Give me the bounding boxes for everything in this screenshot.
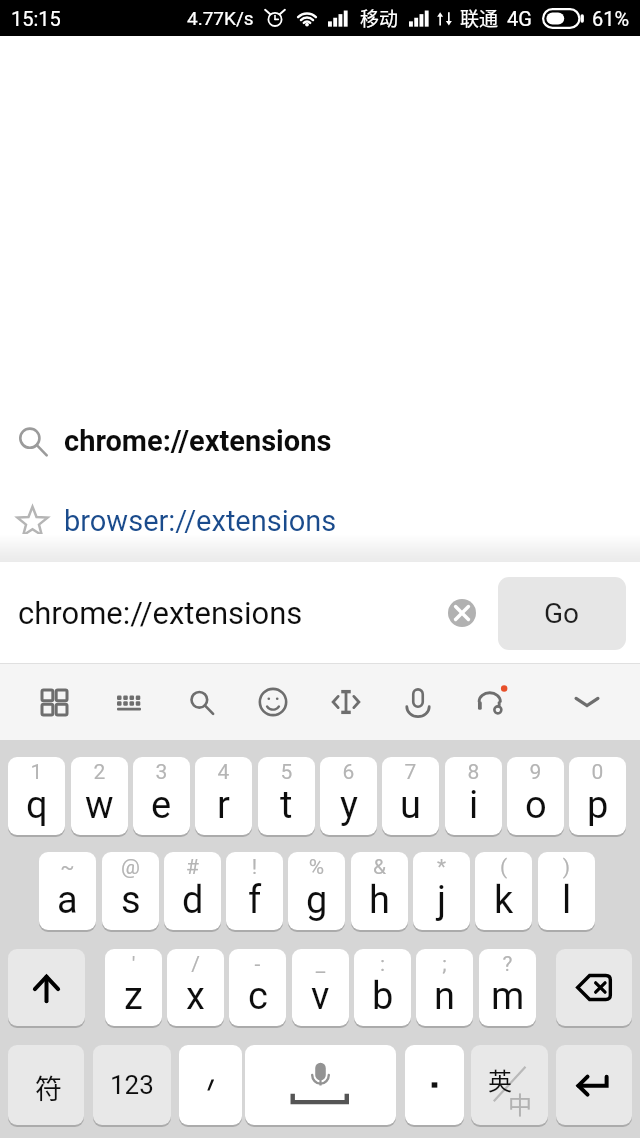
button[interactable]: Space bbox=[245, 1045, 396, 1125]
staticText: # bbox=[164, 855, 221, 880]
staticText: u bbox=[400, 783, 421, 828]
button[interactable]: Period bbox=[405, 1045, 464, 1125]
staticText: 4 bbox=[195, 760, 252, 785]
staticText: 6 bbox=[320, 760, 377, 785]
staticText: * bbox=[413, 855, 470, 880]
staticText: ' bbox=[105, 952, 162, 977]
button[interactable]: Switch input language bbox=[471, 1045, 548, 1125]
staticText: & bbox=[351, 855, 408, 880]
button[interactable]: 123 bbox=[93, 1045, 171, 1125]
button[interactable]: ? bbox=[479, 949, 536, 1026]
staticText: c bbox=[248, 974, 268, 1019]
button[interactable]: 5 bbox=[258, 757, 315, 835]
button[interactable]: 6 bbox=[320, 757, 377, 835]
button[interactable]: : bbox=[354, 949, 411, 1026]
button[interactable]: % bbox=[288, 852, 345, 930]
staticText: p bbox=[587, 783, 609, 828]
button[interactable]: - bbox=[229, 949, 286, 1026]
button[interactable]: & bbox=[351, 852, 408, 930]
button[interactable]: Keyboard layout bbox=[99, 672, 159, 732]
button[interactable]: Search bbox=[171, 672, 231, 732]
button[interactable]: 0 bbox=[569, 757, 626, 835]
staticText: d bbox=[182, 878, 204, 923]
staticText: 15:15 bbox=[11, 7, 61, 30]
button[interactable]: 3 bbox=[133, 757, 190, 835]
staticText: n bbox=[434, 974, 455, 1019]
staticText: 4G bbox=[507, 7, 532, 30]
button[interactable]: _ bbox=[292, 949, 349, 1026]
staticText: z bbox=[124, 974, 143, 1019]
staticText: 英 bbox=[488, 1062, 512, 1097]
staticText: j bbox=[437, 878, 447, 923]
staticText: chrome://extensions bbox=[18, 595, 303, 631]
staticText: i bbox=[469, 783, 479, 828]
staticText: ~ bbox=[39, 855, 96, 880]
staticText: 4.77K/s bbox=[187, 7, 254, 29]
staticText: ( bbox=[475, 855, 532, 880]
staticText: o bbox=[525, 783, 547, 828]
staticText: 9 bbox=[507, 760, 564, 785]
staticText: r bbox=[217, 783, 230, 828]
staticText: 123 bbox=[110, 1070, 154, 1100]
button[interactable]: Move cursor bbox=[316, 672, 376, 732]
button[interactable]: * bbox=[413, 852, 470, 930]
staticText: chrome://extensions bbox=[64, 424, 332, 458]
button[interactable]: ! bbox=[226, 852, 283, 930]
staticText: % bbox=[288, 855, 345, 880]
staticText: @ bbox=[102, 855, 159, 880]
staticText: b bbox=[372, 974, 394, 1019]
button[interactable]: Go bbox=[498, 577, 626, 650]
button[interactable]: 4 bbox=[195, 757, 252, 835]
button[interactable]: Clear text bbox=[440, 591, 484, 635]
button[interactable]: 2 bbox=[71, 757, 128, 835]
staticText: g bbox=[306, 878, 328, 923]
staticText: 2 bbox=[71, 760, 128, 785]
button[interactable]: ' bbox=[105, 949, 162, 1026]
button[interactable]: Shift bbox=[8, 949, 85, 1026]
staticText: 7 bbox=[382, 760, 439, 785]
button[interactable]: 1 bbox=[8, 757, 65, 835]
staticText: ! bbox=[226, 855, 283, 880]
staticText: 3 bbox=[133, 760, 190, 785]
staticText: ; bbox=[416, 952, 473, 977]
button[interactable]: 7 bbox=[382, 757, 439, 835]
button[interactable]: Enter bbox=[556, 1045, 632, 1125]
staticText: _ bbox=[292, 952, 349, 977]
button[interactable]: Support bbox=[461, 672, 521, 732]
button[interactable]: Comma bbox=[179, 1045, 242, 1125]
button[interactable]: @ bbox=[102, 852, 159, 930]
button[interactable]: 符 bbox=[8, 1045, 84, 1125]
button[interactable]: / bbox=[167, 949, 224, 1026]
button[interactable]: # bbox=[164, 852, 221, 930]
staticText: Go bbox=[544, 597, 580, 630]
button[interactable]: Emoji bbox=[243, 672, 303, 732]
button[interactable]: Hide keyboard bbox=[557, 672, 617, 732]
button[interactable]: 9 bbox=[507, 757, 564, 835]
staticText: : bbox=[354, 952, 411, 977]
button[interactable]: ) bbox=[538, 852, 595, 930]
button[interactable]: ; bbox=[416, 949, 473, 1026]
staticText: 1 bbox=[8, 760, 65, 785]
staticText: t bbox=[280, 783, 293, 828]
staticText: browser://extensions bbox=[64, 504, 337, 538]
staticText: 0 bbox=[569, 760, 626, 785]
button[interactable]: ~ bbox=[39, 852, 96, 930]
staticText: 符 bbox=[35, 1068, 62, 1107]
staticText: ? bbox=[479, 952, 536, 977]
staticText: / bbox=[167, 952, 224, 977]
button[interactable]: Backspace bbox=[556, 949, 632, 1026]
staticText: w bbox=[85, 783, 114, 828]
button[interactable]: Voice input bbox=[388, 672, 448, 732]
staticText: 5 bbox=[258, 760, 315, 785]
staticText: x bbox=[186, 974, 205, 1019]
staticText: m bbox=[491, 974, 525, 1019]
staticText: l bbox=[562, 878, 572, 923]
button[interactable]: chrome://extensions bbox=[0, 401, 640, 481]
staticText: 中 bbox=[508, 1086, 532, 1121]
button[interactable]: browser://extensions bbox=[0, 481, 640, 561]
button[interactable]: Apps bbox=[24, 672, 84, 732]
staticText: k bbox=[494, 878, 514, 923]
button[interactable]: ( bbox=[475, 852, 532, 930]
button[interactable]: 8 bbox=[445, 757, 502, 835]
staticText: 移动 bbox=[360, 4, 399, 32]
